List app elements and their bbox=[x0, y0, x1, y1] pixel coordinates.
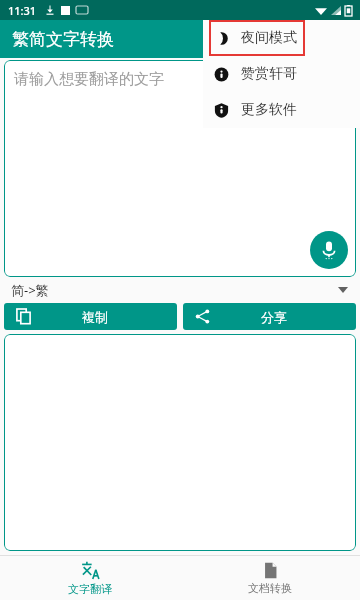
button[interactable]: 请输入想要翻译的文字 bbox=[4, 60, 356, 277]
button[interactable]: 分享 bbox=[183, 303, 356, 330]
staticText: 繁简文字转换 bbox=[12, 29, 114, 50]
button[interactable]: 文档转换 bbox=[180, 556, 360, 600]
staticText: 文档转换 bbox=[248, 581, 292, 595]
button[interactable]: 语音输入 bbox=[310, 231, 348, 269]
staticText: 请输入想要翻译的文字 bbox=[14, 70, 164, 89]
staticText: 分享 bbox=[261, 309, 287, 325]
button[interactable]: 複制 bbox=[4, 303, 177, 330]
staticText: 更多软件 bbox=[241, 101, 297, 119]
staticText: 赞赏轩哥 bbox=[241, 65, 297, 83]
button[interactable]: 赞赏轩哥 bbox=[203, 56, 360, 92]
button[interactable]: 更多软件 bbox=[203, 92, 360, 128]
staticText: 11:31 bbox=[8, 3, 37, 18]
button[interactable]: 夜间模式 bbox=[203, 20, 360, 56]
staticText: 夜间模式 bbox=[241, 29, 297, 47]
staticText: 複制 bbox=[82, 309, 108, 325]
staticText: 文字翻译 bbox=[68, 582, 112, 596]
button[interactable]: 简->繁 bbox=[0, 277, 360, 303]
staticText: 简->繁 bbox=[11, 281, 49, 299]
button[interactable] bbox=[4, 334, 356, 551]
button[interactable]: 文字翻译 bbox=[0, 556, 180, 600]
